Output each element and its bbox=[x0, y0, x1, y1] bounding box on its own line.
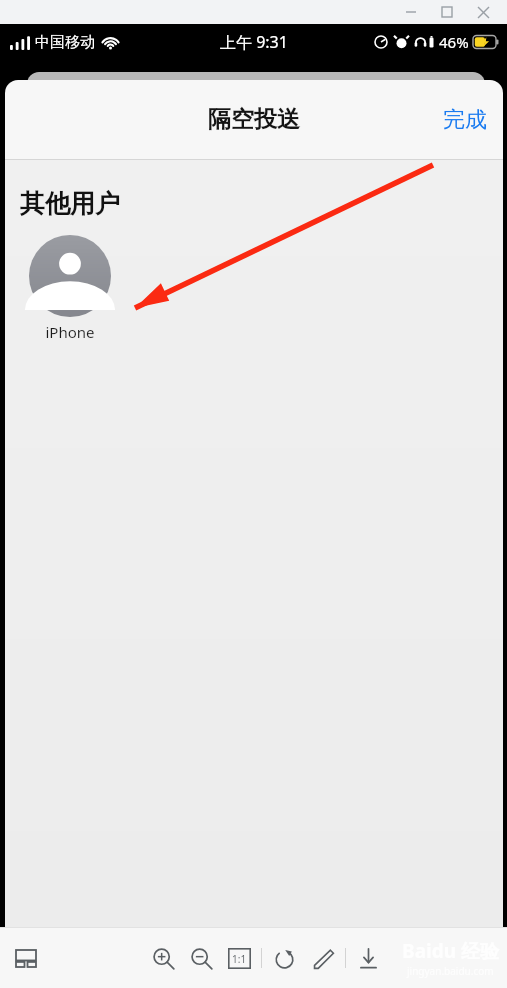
button[interactable]: Layout bbox=[8, 940, 44, 976]
staticText: 1:1 bbox=[232, 952, 247, 966]
button[interactable]: Download bbox=[351, 941, 385, 975]
button[interactable]: Zoom in bbox=[146, 941, 180, 975]
button[interactable]: Rotate bbox=[267, 941, 301, 975]
button[interactable]: Actual size bbox=[222, 941, 256, 975]
staticText: iPhone bbox=[45, 322, 95, 342]
button[interactable]: Close bbox=[465, 1, 501, 23]
button[interactable]: Maximize bbox=[429, 1, 465, 23]
staticText: 其他用户 bbox=[20, 188, 120, 219]
staticText: 中国移动 bbox=[35, 33, 95, 52]
staticText: 46% bbox=[439, 32, 469, 52]
button[interactable]: Minimize bbox=[393, 1, 429, 23]
button[interactable]: 完成 bbox=[435, 100, 495, 140]
staticText: 上午 9:31 bbox=[220, 31, 288, 53]
staticText: 完成 bbox=[443, 106, 487, 134]
staticText: 隔空投送 bbox=[208, 105, 300, 134]
button[interactable]: iPhone bbox=[21, 233, 119, 344]
button[interactable]: Zoom out bbox=[184, 941, 218, 975]
button[interactable]: Edit bbox=[306, 941, 340, 975]
